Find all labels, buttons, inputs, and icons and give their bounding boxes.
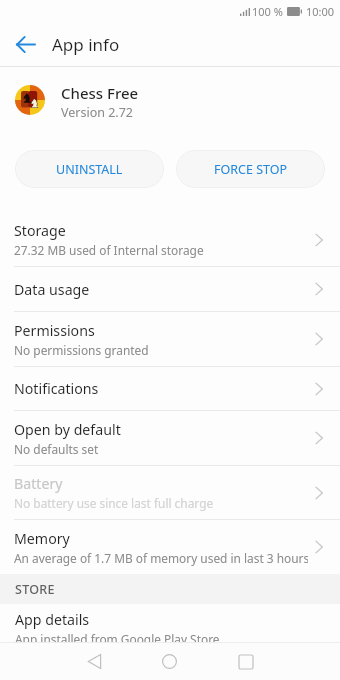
staticText: Permissions	[14, 321, 95, 340]
button[interactable]: Open by default	[0, 411, 340, 465]
staticText: Version 2.72	[61, 104, 134, 121]
staticText: Open by default	[14, 420, 121, 439]
staticText: App info	[52, 33, 120, 56]
staticText: 100 %	[252, 4, 283, 19]
button[interactable]: Permissions	[0, 312, 340, 366]
staticText: No permissions granted	[14, 342, 149, 358]
button[interactable]: Data usage	[0, 267, 340, 311]
staticText: Battery	[14, 474, 63, 493]
staticText: App details	[15, 610, 90, 629]
button[interactable]: Back	[11, 30, 39, 58]
staticText: FORCE STOP	[214, 161, 288, 178]
staticText: No battery use since last full charge	[14, 495, 214, 511]
button[interactable]: Back	[78, 645, 111, 678]
button[interactable]: Recents	[229, 645, 262, 678]
staticText: STORE	[15, 581, 55, 598]
button[interactable]: FORCE STOP	[176, 150, 325, 188]
staticText: Memory	[14, 529, 70, 548]
staticText: Notifications	[14, 379, 99, 398]
staticText: 10:00	[306, 4, 335, 19]
staticText: An average of 1.7 MB of memory used in l…	[14, 550, 308, 566]
button[interactable]: Notifications	[0, 367, 340, 410]
button[interactable]: Battery	[0, 466, 340, 519]
staticText: 27.32 MB used of Internal storage	[14, 242, 204, 258]
button[interactable]: UNINSTALL	[15, 150, 164, 188]
button[interactable]: Storage	[0, 213, 340, 266]
staticText: Storage	[14, 221, 66, 240]
button[interactable]: Memory	[0, 520, 340, 574]
staticText: App installed from Google Play Store	[15, 631, 220, 642]
staticText: Data usage	[14, 280, 90, 299]
button[interactable]: Home	[153, 645, 186, 678]
staticText: UNINSTALL	[56, 161, 123, 178]
staticText: No defaults set	[14, 441, 99, 457]
staticText: Chess Free	[61, 83, 139, 103]
